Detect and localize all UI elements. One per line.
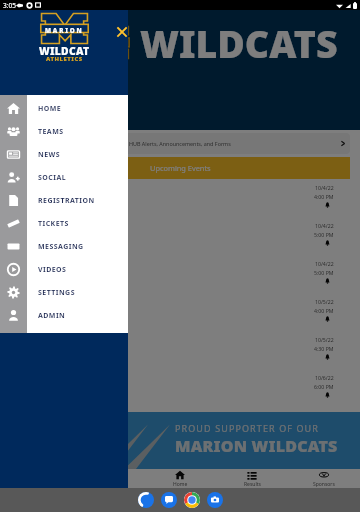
button[interactable]: Messages xyxy=(161,492,177,508)
staticText: Results xyxy=(244,481,261,488)
staticText: Home xyxy=(173,481,188,488)
staticText: Cross Country xyxy=(10,303,58,313)
staticText: MESSAGING xyxy=(38,242,84,252)
staticText: vs. Eastside xyxy=(10,275,43,283)
button[interactable]: Varsity Football xyxy=(0,179,360,217)
staticText: Varsity Soccer xyxy=(10,265,57,275)
staticText: 10/5/22 xyxy=(315,298,334,305)
staticText: 10/4/22 xyxy=(315,184,334,191)
staticText: VIDEOS xyxy=(38,265,67,275)
button[interactable]: ADMIN xyxy=(0,304,128,327)
button[interactable]: Upcoming Events xyxy=(10,157,350,179)
staticText: 10/4/22 xyxy=(315,222,334,229)
button[interactable]: Home xyxy=(144,469,216,488)
button[interactable]: JV Volleyball xyxy=(0,217,360,255)
staticText: 5:00 PM xyxy=(314,269,334,276)
button[interactable]: REGISTRATION xyxy=(0,189,128,212)
button[interactable]: Camera xyxy=(207,492,223,508)
staticText: REGISTRATION xyxy=(38,196,95,206)
staticText: 6:00 PM xyxy=(314,383,334,390)
staticText: MARION WILDCATS xyxy=(175,435,338,457)
staticText: JV Volleyball xyxy=(10,227,51,237)
staticText: ADMIN xyxy=(38,311,66,321)
button[interactable]: Chrome xyxy=(184,492,200,508)
staticText: 4:00 PM xyxy=(314,193,334,200)
staticText: 10/5/22 xyxy=(315,336,334,343)
staticText: Upcoming Events xyxy=(150,163,211,173)
staticText: WILDCATS xyxy=(140,18,338,69)
staticText: HUB Alerts, Announcements, and Forms xyxy=(129,140,231,147)
staticText: Invitational xyxy=(10,313,42,321)
button[interactable]: Sponsors xyxy=(288,469,360,488)
button[interactable]: Varsity Soccer xyxy=(0,255,360,293)
staticText: Varsity Football xyxy=(10,189,62,199)
staticText: TEAMS xyxy=(38,127,64,137)
staticText: 5:00 PM xyxy=(314,231,334,238)
staticText: @ Northridge xyxy=(10,237,49,245)
button[interactable]: HOME xyxy=(0,97,128,120)
staticText: HOME xyxy=(38,104,62,114)
staticText: PROUD SUPPORTER OF OUR xyxy=(175,422,319,434)
staticText: 4:00 PM xyxy=(314,307,334,314)
staticText: 10/4/22 xyxy=(315,260,334,267)
button[interactable]: Freshman Football xyxy=(0,331,360,369)
button[interactable]: TICKETS xyxy=(0,212,128,235)
button[interactable]: NEWS xyxy=(0,143,128,166)
staticText: MARION xyxy=(45,26,84,34)
staticText: 3:05 xyxy=(3,1,16,10)
staticText: SOCIAL xyxy=(38,173,67,183)
staticText: WILDCAT xyxy=(39,44,90,58)
button[interactable]: VIDEOS xyxy=(0,258,128,281)
staticText: TICKETS xyxy=(38,219,69,229)
button[interactable]: Phone xyxy=(138,492,154,508)
staticText: MARION xyxy=(84,39,125,48)
button[interactable]: Sponsor banner xyxy=(0,412,360,469)
staticText: 4:30 PM xyxy=(314,345,334,352)
button[interactable]: Close navigation menu xyxy=(113,23,130,40)
button[interactable]: TEAMS xyxy=(0,120,128,143)
button[interactable]: Varsity Volleyball xyxy=(0,369,360,407)
button[interactable]: Cross Country xyxy=(0,293,360,331)
button[interactable]: SETTINGS xyxy=(0,281,128,304)
staticText: 10/6/22 xyxy=(315,374,334,381)
staticText: SETTINGS xyxy=(38,288,75,298)
staticText: vs. Lincoln High xyxy=(10,199,55,207)
staticText: Sponsors xyxy=(313,481,335,488)
staticText: ATHLETICS xyxy=(46,55,83,63)
button[interactable]: MESSAGING xyxy=(0,235,128,258)
button[interactable]: SOCIAL xyxy=(0,166,128,189)
staticText: NEWS xyxy=(38,150,61,160)
button[interactable]: HUB Alerts, Announcements, and Forms xyxy=(10,133,350,154)
button[interactable]: News xyxy=(72,469,144,488)
button[interactable]: Results xyxy=(216,469,288,488)
